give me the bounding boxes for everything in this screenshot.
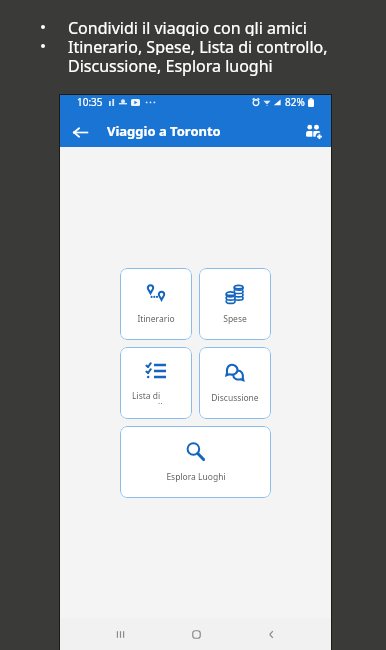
staticText: Esplora Luoghi [166, 471, 226, 483]
staticText: Itinerario, Spese, Lista di controllo, [68, 36, 328, 55]
staticText: 10:35 [77, 95, 103, 109]
button[interactable]: Lista di controllo [120, 347, 192, 419]
staticText: Spese [223, 313, 247, 325]
button[interactable]: Recents [105, 619, 135, 649]
staticText: Itinerario [137, 313, 175, 325]
button[interactable]: Itinerario [120, 268, 192, 340]
staticText: Viaggio a Toronto [107, 122, 221, 140]
button[interactable]: Back [256, 619, 286, 649]
button[interactable]: Add people [299, 117, 329, 147]
staticText: Lista di controllo [132, 390, 180, 404]
button[interactable]: Back [66, 118, 94, 146]
button[interactable]: Discussione [199, 347, 271, 419]
button[interactable]: Esplora Luoghi [120, 426, 271, 498]
button[interactable]: Home [181, 619, 211, 649]
staticText: Condividi il viaggio con gli amici [68, 17, 307, 36]
button[interactable]: Spese [199, 268, 271, 340]
staticText: Discussione [211, 392, 259, 404]
staticText: 82% [285, 95, 305, 109]
staticText: Discussione, Esplora luoghi [68, 55, 273, 77]
